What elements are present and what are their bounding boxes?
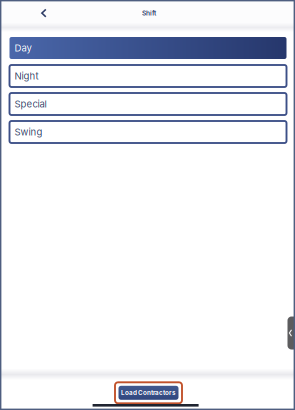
button[interactable]: Special	[9, 93, 286, 115]
button[interactable]: Open side panel	[287, 316, 295, 349]
button[interactable]: Swing	[9, 121, 286, 143]
staticText: Shift	[142, 9, 156, 17]
staticText: Special	[14, 98, 46, 110]
staticText: Day	[14, 42, 31, 54]
staticText: Night	[14, 70, 38, 82]
button[interactable]: Load Contractors	[115, 382, 182, 403]
staticText: Swing	[14, 126, 42, 138]
button[interactable]: Back	[31, 2, 57, 24]
button[interactable]: Day	[9, 37, 286, 59]
staticText: Load Contractors	[121, 389, 176, 397]
button[interactable]: Night	[9, 65, 286, 87]
